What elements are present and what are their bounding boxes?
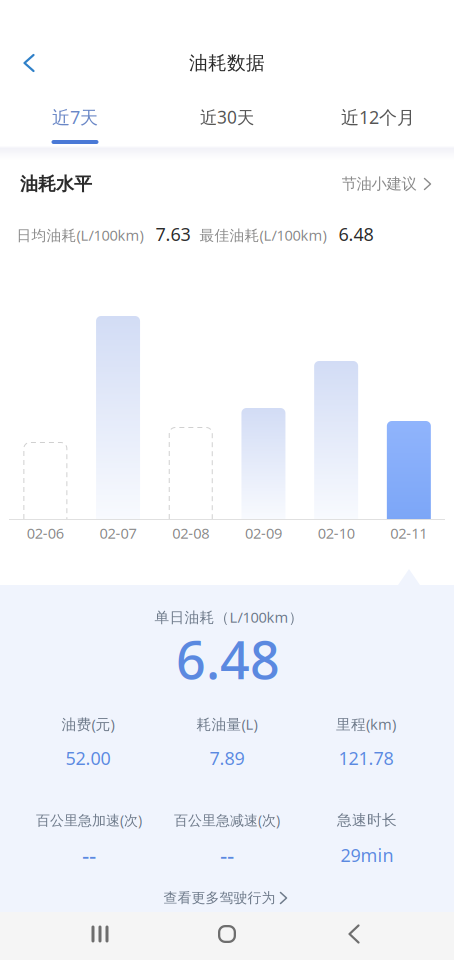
staticText: 近7天	[52, 105, 98, 129]
staticText: 查看更多驾驶行为	[163, 889, 275, 907]
button[interactable]: 近7天	[5, 92, 145, 150]
staticText: 7.89	[209, 746, 244, 770]
staticText: 52.00	[65, 746, 110, 770]
button[interactable]: Back	[6, 40, 52, 86]
staticText: 02-09	[245, 523, 282, 543]
staticText: 02-07	[100, 523, 137, 543]
staticText: 29min	[340, 843, 393, 867]
staticText: 油费(元)	[61, 714, 114, 734]
staticText: 7.63	[155, 222, 190, 246]
staticText: 百公里急减速(次)	[174, 810, 280, 830]
staticText: 02-08	[172, 523, 209, 543]
staticText: --	[220, 840, 234, 870]
button[interactable]: Home	[187, 910, 267, 958]
button[interactable]: 查看更多驾驶行为	[153, 881, 296, 915]
staticText: 121.78	[338, 746, 393, 770]
button[interactable]: 节油小建议	[341, 165, 430, 203]
staticText: 里程(km)	[336, 714, 396, 734]
staticText: 单日油耗（L/100km）	[154, 607, 303, 627]
button[interactable]: 近30天	[157, 92, 297, 150]
staticText: 6.48	[338, 222, 373, 246]
staticText: 02-06	[27, 523, 64, 543]
staticText: --	[82, 840, 96, 870]
staticText: 02-10	[318, 523, 355, 543]
staticText: 油耗数据	[189, 51, 265, 75]
button[interactable]: Recent apps	[60, 910, 140, 958]
staticText: 节油小建议	[341, 174, 416, 194]
staticText: 油耗水平	[20, 173, 92, 195]
staticText: 近12个月	[341, 105, 415, 129]
staticText: 耗油量(L)	[196, 714, 257, 734]
staticText: 6.48	[176, 624, 280, 694]
staticText: 百公里急加速(次)	[36, 810, 142, 830]
staticText: 最佳油耗(L/100km)	[199, 225, 326, 245]
staticText: 近30天	[200, 105, 254, 129]
button[interactable]: Back	[314, 910, 394, 958]
button[interactable]: 近12个月	[308, 92, 448, 150]
staticText: 02-11	[390, 523, 427, 543]
staticText: 日均油耗(L/100km)	[16, 225, 143, 245]
staticText: 急速时长	[337, 811, 397, 829]
